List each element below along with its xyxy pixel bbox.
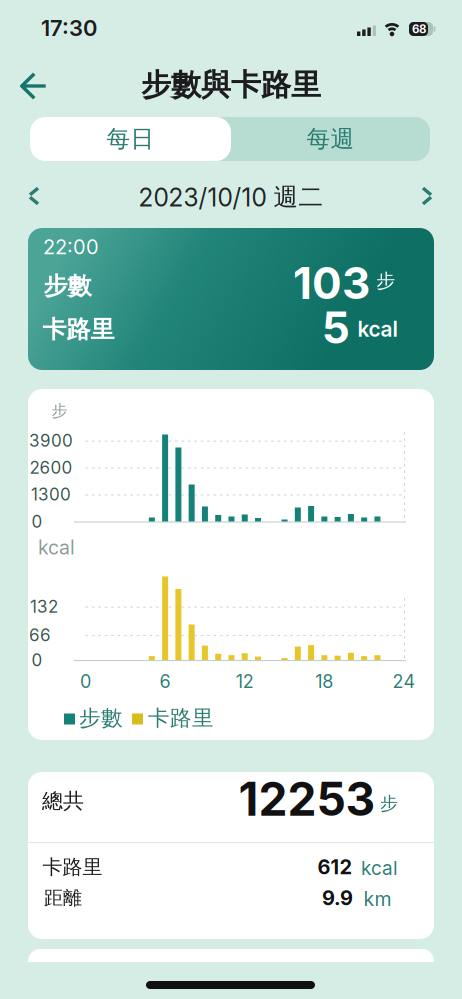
staticText: 6 bbox=[160, 671, 171, 692]
staticText: 步數 bbox=[44, 271, 92, 301]
staticText: 步 bbox=[380, 792, 398, 815]
staticText: 步 bbox=[51, 401, 67, 421]
staticText: kcal bbox=[361, 856, 398, 879]
staticText: 17:30 bbox=[41, 15, 97, 41]
staticText: 每日 bbox=[106, 124, 154, 154]
staticText: 步數與卡路里 bbox=[141, 66, 321, 104]
staticText: 22:00 bbox=[43, 235, 99, 259]
staticText: 卡路里 bbox=[42, 854, 102, 880]
staticText: km bbox=[363, 887, 391, 911]
staticText: 68 bbox=[412, 22, 426, 36]
staticText: 18 bbox=[315, 671, 333, 692]
button[interactable]: Back bbox=[19, 72, 47, 100]
button[interactable]: Next day bbox=[410, 179, 444, 213]
staticText: 總共 bbox=[42, 788, 84, 814]
staticText: 132 bbox=[30, 596, 58, 617]
staticText: 2600 bbox=[29, 457, 72, 478]
staticText: 66 bbox=[29, 625, 51, 645]
button[interactable]: 每日 bbox=[30, 117, 231, 161]
staticText: 距離 bbox=[44, 886, 82, 910]
staticText: 12 bbox=[236, 671, 254, 692]
staticText: kcal bbox=[38, 536, 75, 559]
button[interactable]: 每週 bbox=[230, 117, 431, 161]
staticText: 每週 bbox=[306, 124, 354, 154]
staticText: kcal bbox=[357, 316, 397, 342]
staticText: 步 bbox=[376, 269, 395, 293]
staticText: 3900 bbox=[29, 430, 73, 451]
staticText: 2023/10/10 週二 bbox=[138, 182, 323, 212]
staticText: 9.9 bbox=[322, 886, 353, 910]
staticText: 0 bbox=[31, 650, 42, 670]
button[interactable]: Previous day bbox=[17, 179, 51, 213]
staticText: 1300 bbox=[31, 484, 71, 505]
staticText: 卡路里 bbox=[42, 314, 114, 345]
staticText: 0 bbox=[31, 511, 42, 532]
staticText: 步數 bbox=[79, 704, 123, 732]
staticText: 卡路里 bbox=[148, 704, 214, 732]
staticText: 5 bbox=[322, 301, 350, 354]
staticText: 0 bbox=[80, 671, 91, 692]
staticText: 612 bbox=[317, 855, 352, 879]
staticText: 12253 bbox=[238, 771, 375, 827]
staticText: 103 bbox=[293, 256, 370, 310]
staticText: 24 bbox=[392, 671, 415, 692]
